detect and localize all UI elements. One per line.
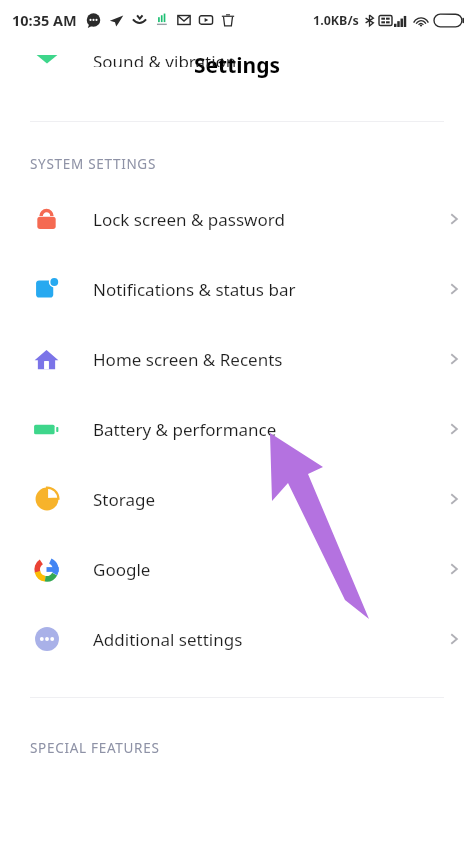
button[interactable]: Storage	[0, 464, 474, 534]
button[interactable]: Home screen and Recents	[0, 324, 474, 394]
other: Battery and performance	[33, 416, 60, 443]
staticText: Lock screen & password	[93, 208, 285, 231]
staticText: Google	[93, 558, 151, 581]
button[interactable]: Google	[0, 534, 474, 604]
other: Home screen and Recents	[33, 346, 60, 373]
button[interactable]: Notifications and status bar	[0, 254, 474, 324]
staticText: Battery & performance	[93, 418, 277, 441]
staticText: SYSTEM SETTINGS	[30, 155, 157, 173]
staticText: SPECIAL FEATURES	[30, 739, 160, 757]
staticText: 1.0KB/s	[313, 12, 359, 29]
staticText: Notifications & status bar	[93, 278, 296, 301]
other: Additional settings	[34, 626, 60, 652]
button[interactable]: Lock screen and password	[0, 184, 474, 254]
staticText: Storage	[93, 488, 156, 511]
other: Storage	[34, 486, 60, 512]
other: Lock screen and password	[33, 206, 60, 233]
staticText: Additional settings	[93, 628, 243, 651]
staticText: Home screen & Recents	[93, 348, 283, 371]
other: Notifications and status bar	[34, 276, 60, 302]
staticText: 10:35 AM	[12, 10, 77, 30]
staticText: Sound & vibration	[93, 50, 237, 67]
other: Google	[33, 556, 60, 583]
button[interactable]: Battery and performance	[0, 394, 474, 464]
button[interactable]: Additional settings	[0, 604, 474, 674]
staticText: Settings	[194, 51, 281, 80]
